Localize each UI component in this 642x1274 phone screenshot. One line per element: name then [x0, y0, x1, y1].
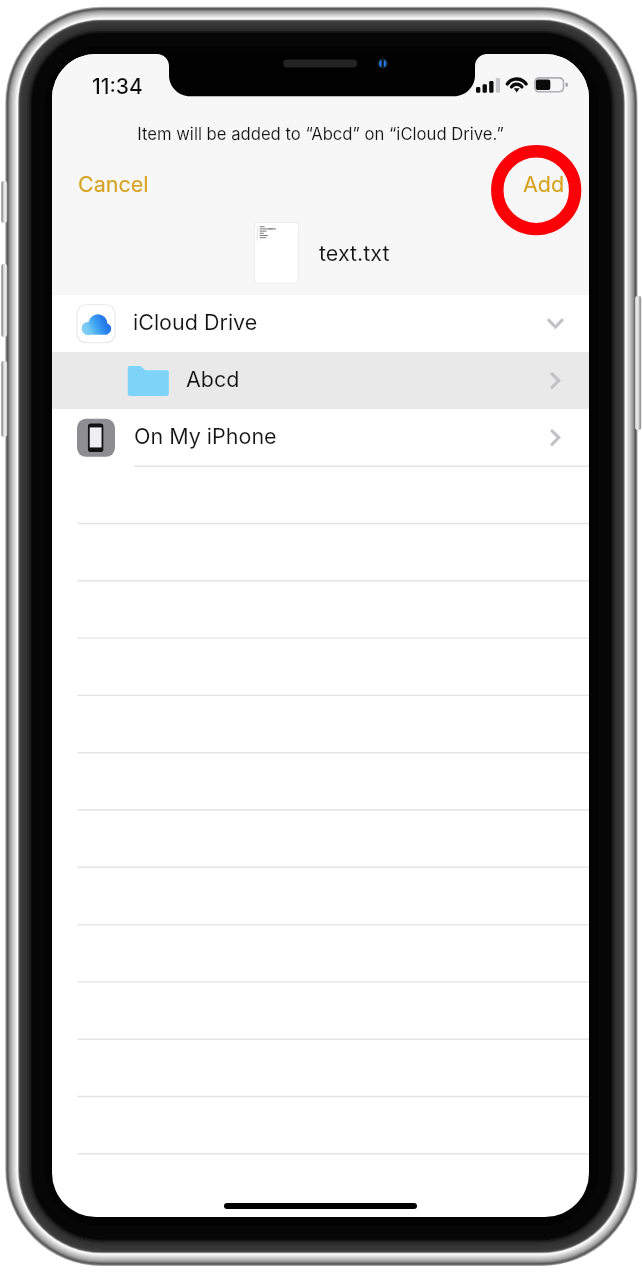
staticText: Add	[523, 171, 565, 197]
staticText: Item will be added to “Abcd” on “iCloud …	[52, 124, 589, 144]
staticText: Abcd	[186, 366, 240, 392]
button[interactable]: On My iPhone	[52, 409, 589, 466]
button[interactable]: Add	[502, 166, 574, 202]
button[interactable]: Cancel	[66, 166, 166, 202]
staticText: On My iPhone	[134, 423, 277, 449]
staticText: 11:34	[92, 74, 143, 99]
staticText: Cancel	[78, 171, 149, 197]
staticText: text.txt	[319, 240, 390, 266]
button[interactable]: iCloud Drive	[52, 295, 589, 352]
staticText: iCloud Drive	[133, 309, 258, 335]
button[interactable]: Abcd	[52, 352, 589, 409]
